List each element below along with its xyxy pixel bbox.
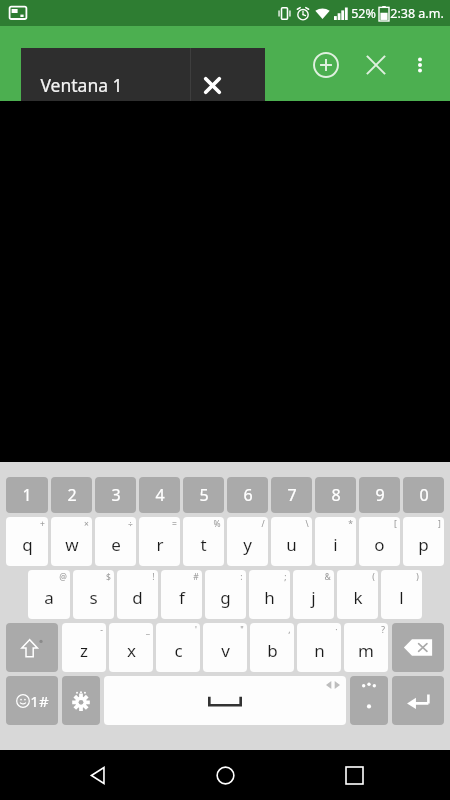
staticText: o [374, 533, 385, 556]
button[interactable]: 5 [183, 477, 224, 513]
staticText: 5 [199, 484, 209, 506]
button[interactable]: _ [109, 623, 153, 672]
staticText: 8 [331, 484, 341, 506]
button[interactable]: 4 [139, 477, 180, 513]
staticText: 2:38 a.m. [390, 5, 444, 22]
staticText: w [65, 533, 79, 556]
staticText: ) [416, 571, 419, 583]
button[interactable]: [ [359, 517, 400, 566]
button[interactable]: ) [381, 570, 422, 619]
staticText: z [80, 639, 88, 662]
staticText: [ [394, 518, 397, 530]
button[interactable]: Cerrar Ventana 1 [189, 62, 235, 108]
staticText: ] [438, 518, 441, 530]
button[interactable]: 8 [315, 477, 356, 513]
staticText: d [132, 586, 143, 609]
button[interactable]: Más opciones [400, 45, 440, 85]
staticText: × [84, 518, 89, 530]
button[interactable]: 2 [51, 477, 92, 513]
button[interactable]: $ [73, 570, 114, 619]
staticText: , [288, 624, 291, 636]
staticText: 9 [375, 484, 385, 506]
staticText: % [213, 518, 221, 530]
button[interactable]: , [250, 623, 294, 672]
staticText: r [156, 533, 164, 556]
staticText: b [267, 639, 278, 662]
button[interactable]: ? [344, 623, 388, 672]
button[interactable]: + [6, 517, 48, 566]
button[interactable]: 6 [227, 477, 268, 513]
staticText: : [240, 571, 243, 583]
staticText: n [314, 639, 325, 662]
staticText: 1# [30, 691, 49, 711]
button[interactable]: 3 [95, 477, 136, 513]
staticText: l [399, 586, 404, 609]
staticText: 0 [419, 484, 429, 506]
button[interactable]: 9 [359, 477, 400, 513]
staticText: g [220, 586, 231, 609]
button[interactable]: ] [403, 517, 444, 566]
button[interactable]: " [203, 623, 247, 672]
staticText: a [44, 586, 54, 609]
button[interactable]: ; [249, 570, 290, 619]
staticText: = [172, 518, 177, 530]
button[interactable]: · [297, 623, 341, 672]
staticText: x [127, 639, 136, 662]
button[interactable]: ( [337, 570, 378, 619]
button[interactable]: Recientes [322, 750, 386, 800]
button[interactable]: ! [117, 570, 158, 619]
button[interactable]: 7 [271, 477, 312, 513]
button[interactable]: Ventana 1 [21, 48, 265, 121]
button[interactable]: Espacio [104, 676, 346, 725]
button[interactable]: Intro [392, 676, 444, 725]
button[interactable]: Configuración [62, 676, 100, 725]
button[interactable]: ' [156, 623, 200, 672]
staticText: m [358, 639, 374, 662]
button[interactable]: 1 [6, 477, 48, 513]
staticText: # [193, 571, 199, 583]
staticText: 1 [22, 484, 32, 506]
button[interactable]: Cerrar [354, 43, 398, 87]
staticText: s [89, 586, 98, 609]
staticText: u [286, 533, 297, 556]
staticText: 6 [243, 484, 253, 506]
button[interactable]: 1# [6, 676, 58, 725]
button[interactable]: Borrar [392, 623, 444, 672]
button[interactable]: Atrás [65, 750, 129, 800]
staticText: " [240, 624, 244, 636]
staticText: & [324, 571, 331, 583]
staticText: ? [381, 624, 385, 636]
staticText: f [179, 586, 185, 609]
button[interactable]: 0 [403, 477, 444, 513]
staticText: ! [152, 571, 155, 583]
button[interactable] [350, 676, 388, 725]
staticText: i [333, 533, 338, 556]
button[interactable]: @ [28, 570, 70, 619]
button[interactable]: % [183, 517, 224, 566]
button[interactable]: - [62, 623, 106, 672]
button[interactable]: × [51, 517, 92, 566]
button[interactable]: Inicio [193, 750, 257, 800]
button[interactable]: ÷ [95, 517, 136, 566]
button[interactable]: : [205, 570, 246, 619]
button[interactable]: # [161, 570, 202, 619]
button[interactable]: Nueva ventana [304, 43, 348, 87]
button[interactable]: Mayúsculas [6, 623, 58, 672]
staticText: / [261, 518, 265, 530]
staticText: 2 [67, 484, 77, 506]
staticText: k [353, 586, 363, 609]
staticText: j [311, 586, 316, 609]
staticText: · [335, 624, 338, 636]
button[interactable]: \ [271, 517, 312, 566]
button[interactable]: & [293, 570, 334, 619]
staticText: \ [305, 518, 309, 530]
staticText: @ [59, 571, 67, 583]
button[interactable]: * [315, 517, 356, 566]
button[interactable]: = [139, 517, 180, 566]
staticText: ( [372, 571, 375, 583]
staticText: ÷ [128, 518, 133, 530]
button[interactable]: / [227, 517, 268, 566]
staticText: y [243, 533, 252, 556]
